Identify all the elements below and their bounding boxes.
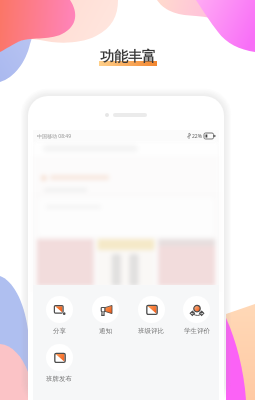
button[interactable]: 班级评比 (128, 296, 174, 335)
button[interactable]: 班牌发布 (36, 344, 82, 383)
other: 班级评比 (145, 303, 159, 317)
button[interactable]: 通知 (82, 296, 128, 335)
button[interactable]: 分享 (36, 296, 82, 335)
other: 通知 (99, 303, 113, 317)
staticText: 班级评比 (138, 327, 164, 335)
staticText: 中国移动 08:49 (37, 133, 72, 140)
other: 分享 (53, 303, 67, 317)
staticText: 22% (192, 133, 202, 140)
button[interactable]: 学生评价 (174, 296, 219, 335)
staticText: 功能丰富 (100, 48, 156, 66)
staticText: 分享 (53, 327, 66, 335)
staticText: 班牌发布 (46, 375, 72, 383)
staticText: 学生评价 (184, 327, 210, 335)
other: 班牌发布 (53, 351, 67, 365)
staticText: 通知 (99, 327, 112, 335)
other: 学生评价 (190, 303, 204, 317)
